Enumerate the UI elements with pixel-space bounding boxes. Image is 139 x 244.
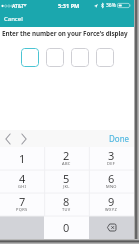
staticText: 9: [108, 194, 115, 209]
staticText: 5: [63, 171, 70, 186]
button[interactable]: Next field: [16, 130, 32, 147]
staticText: JKL: [63, 184, 70, 189]
button[interactable]: 3: [89, 147, 134, 170]
staticText: DEF: [107, 161, 116, 166]
button[interactable]: Cancel: [4, 15, 23, 23]
staticText: AT&T: [12, 2, 25, 9]
staticText: 3: [108, 148, 115, 163]
staticText: GHI: [18, 184, 27, 189]
staticText: 4: [19, 171, 26, 186]
button[interactable]: 4: [0, 170, 44, 193]
button[interactable]: Done: [109, 130, 130, 147]
button[interactable]: 1: [0, 147, 44, 170]
staticText: 0: [63, 220, 70, 235]
staticText: Done: [109, 133, 130, 144]
staticText: TUV: [62, 207, 71, 212]
button[interactable]: [21, 48, 39, 67]
staticText: Cancel: [4, 15, 23, 23]
staticText: 6: [108, 171, 115, 186]
button[interactable]: [96, 48, 114, 67]
button[interactable]: 9: [89, 193, 134, 216]
button[interactable]: 5: [44, 170, 89, 193]
staticText: 2: [63, 148, 70, 163]
button[interactable]: Previous field: [0, 130, 16, 147]
button[interactable]: 2: [44, 147, 89, 170]
staticText: WXYZ: [105, 207, 118, 212]
staticText: 8: [63, 194, 70, 209]
staticText: ABC: [62, 161, 71, 166]
button[interactable]: 6: [89, 170, 134, 193]
button[interactable]: Delete: [89, 216, 134, 239]
staticText: Enter the number on your Force's display: [2, 29, 134, 38]
staticText: 1: [19, 151, 26, 166]
button[interactable]: [71, 48, 89, 67]
staticText: PQRS: [16, 207, 28, 212]
staticText: 5:31 PM: [58, 2, 80, 10]
staticText: 7: [19, 194, 26, 209]
button[interactable]: 7: [0, 193, 44, 216]
button[interactable]: [46, 48, 64, 67]
staticText: MNO: [106, 184, 117, 189]
button[interactable]: 8: [44, 193, 89, 216]
staticText: 36%: [106, 2, 116, 9]
button[interactable]: 0: [44, 216, 89, 239]
